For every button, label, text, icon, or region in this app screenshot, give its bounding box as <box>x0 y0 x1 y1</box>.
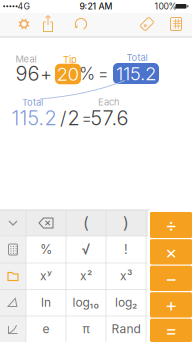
staticText: − <box>165 267 177 290</box>
staticText: 2 <box>67 106 79 130</box>
staticText: Tip <box>63 54 77 65</box>
button[interactable]: + <box>150 292 192 317</box>
staticText: Rand <box>111 322 140 336</box>
button[interactable]: % <box>26 237 65 262</box>
staticText: % <box>79 63 95 84</box>
button[interactable]: 20 <box>55 64 81 84</box>
staticText: e <box>42 322 49 336</box>
staticText: Total <box>22 97 43 108</box>
staticText: ( <box>83 213 89 233</box>
button[interactable]: Rand <box>106 316 145 341</box>
button[interactable]: ( <box>66 210 105 235</box>
button[interactable]: Number keypad <box>0 236 26 262</box>
staticText: ! <box>124 242 128 257</box>
button[interactable]: log₁₀ <box>66 290 105 315</box>
button[interactable]: ln <box>26 290 65 315</box>
staticText: 100% <box>154 1 177 12</box>
staticText: 4G <box>17 1 29 12</box>
staticText: + <box>40 63 52 85</box>
button[interactable]: ! <box>106 237 145 262</box>
staticText: ln <box>41 295 51 310</box>
button[interactable]: Undo <box>73 16 89 32</box>
staticText: Total <box>126 52 147 63</box>
staticText: 96 <box>15 61 39 86</box>
button[interactable]: × <box>150 239 192 264</box>
staticText: xʸ <box>40 269 52 283</box>
button[interactable]: x³ <box>106 263 145 288</box>
button[interactable]: Hide keyboard <box>0 210 26 236</box>
staticText: 115.2 <box>11 106 56 130</box>
button[interactable]: ) <box>106 210 145 235</box>
staticText: log₂ <box>115 295 137 310</box>
staticText: x³ <box>120 269 132 283</box>
staticText: √ <box>81 241 90 258</box>
staticText: ) <box>123 213 129 233</box>
staticText: % <box>40 242 52 257</box>
button[interactable]: History <box>169 16 183 32</box>
staticText: = <box>165 319 177 342</box>
button[interactable]: log₂ <box>106 290 145 315</box>
staticText: = <box>98 64 108 83</box>
staticText: 115.2 <box>116 62 156 85</box>
staticText: x² <box>80 269 92 283</box>
staticText: × <box>165 241 177 263</box>
button[interactable]: Delete <box>26 210 66 236</box>
staticText: + <box>165 294 177 316</box>
staticText: ÷ <box>165 214 177 236</box>
staticText: log₁₀ <box>72 295 99 310</box>
staticText: 57.6 <box>90 106 128 130</box>
button[interactable]: 115.2 <box>113 63 159 84</box>
staticText: Meal <box>15 53 36 65</box>
staticText: 20 <box>56 63 79 85</box>
button[interactable]: π <box>66 316 105 341</box>
button[interactable]: Share <box>41 14 55 32</box>
button[interactable]: ÷ <box>150 212 192 238</box>
staticText: π <box>82 322 89 336</box>
button[interactable]: xʸ <box>26 263 65 288</box>
button[interactable]: √ <box>66 237 105 262</box>
button[interactable]: Functions <box>0 263 26 289</box>
button[interactable]: = <box>150 319 192 342</box>
staticText: = <box>81 108 91 128</box>
button[interactable]: Angles <box>0 316 26 342</box>
staticText: Each <box>98 96 120 108</box>
staticText: / <box>60 107 66 129</box>
button[interactable]: Trigonometry <box>0 289 26 315</box>
button[interactable]: x² <box>66 263 105 288</box>
button[interactable]: e <box>26 316 65 341</box>
staticText: 9:21 AM <box>79 1 112 12</box>
button[interactable]: Labels <box>139 16 155 32</box>
button[interactable]: − <box>150 266 192 291</box>
button[interactable]: Settings <box>15 15 33 33</box>
